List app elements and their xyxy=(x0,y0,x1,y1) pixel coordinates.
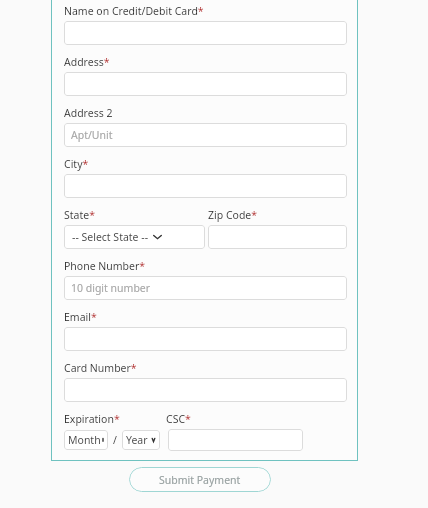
button[interactable] xyxy=(168,429,303,451)
button[interactable]: Submit Payment xyxy=(129,467,271,492)
button[interactable]: 10 digit number xyxy=(64,276,347,300)
button[interactable]: Expiration year xyxy=(122,430,160,450)
staticText: City* xyxy=(64,157,89,171)
staticText: Month xyxy=(68,433,101,447)
staticText: -- Select State -- xyxy=(72,230,149,244)
staticText: Card Number* xyxy=(64,361,137,375)
button[interactable]: Apt/Unit xyxy=(64,123,347,147)
staticText: Zip Code* xyxy=(208,208,258,222)
staticText: Apt/Unit xyxy=(71,128,113,142)
staticText: Year xyxy=(126,433,148,447)
button[interactable] xyxy=(64,378,347,402)
staticText: CSC* xyxy=(166,412,191,426)
staticText: Phone Number* xyxy=(64,259,146,273)
button[interactable] xyxy=(64,21,347,45)
staticText: Address* xyxy=(64,55,110,69)
button[interactable] xyxy=(208,225,347,249)
staticText: / xyxy=(113,433,117,447)
button[interactable] xyxy=(64,174,347,198)
button[interactable] xyxy=(64,327,347,351)
staticText: State* xyxy=(64,208,95,222)
button[interactable]: Expiration month xyxy=(64,430,108,450)
button[interactable] xyxy=(64,72,347,96)
staticText: 10 digit number xyxy=(71,281,151,295)
staticText: Address 2 xyxy=(64,106,113,120)
button[interactable]: Select State xyxy=(64,225,205,249)
staticText: Submit Payment xyxy=(159,473,241,487)
staticText: Name on Credit/Debit Card* xyxy=(64,4,204,18)
staticText: Expiration* xyxy=(64,412,120,426)
staticText: Email* xyxy=(64,310,97,324)
